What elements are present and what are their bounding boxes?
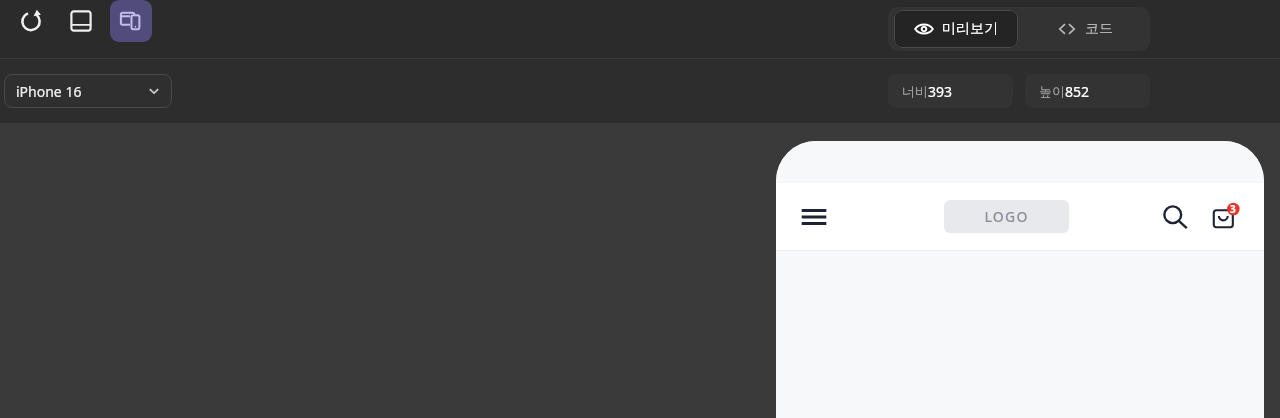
button[interactable]: Device preview [110, 0, 152, 42]
staticText: 높이 [1039, 83, 1065, 99]
button[interactable]: 높이 [1025, 74, 1150, 108]
button[interactable]: Search [1156, 198, 1194, 236]
staticText: LOGO [984, 207, 1029, 226]
button[interactable]: iPhone 16 [4, 74, 172, 108]
button[interactable]: Menu [796, 199, 832, 235]
staticText: 너비 [902, 83, 928, 99]
staticText: 3 [1230, 202, 1236, 216]
staticText: 코드 [1085, 20, 1113, 38]
button[interactable]: LOGO [944, 200, 1069, 233]
button[interactable]: 미리보기 [894, 10, 1018, 48]
staticText: 미리보기 [942, 20, 998, 38]
button[interactable]: Shopping bag, 3 items [1206, 198, 1244, 236]
staticText: 393 [928, 82, 953, 101]
button[interactable]: Window layout [60, 0, 102, 42]
button[interactable]: 코드 [1026, 10, 1144, 48]
button[interactable]: Refresh [10, 0, 52, 42]
button[interactable]: 너비 [888, 74, 1013, 108]
staticText: iPhone 16 [16, 82, 82, 101]
staticText: 852 [1065, 82, 1090, 101]
